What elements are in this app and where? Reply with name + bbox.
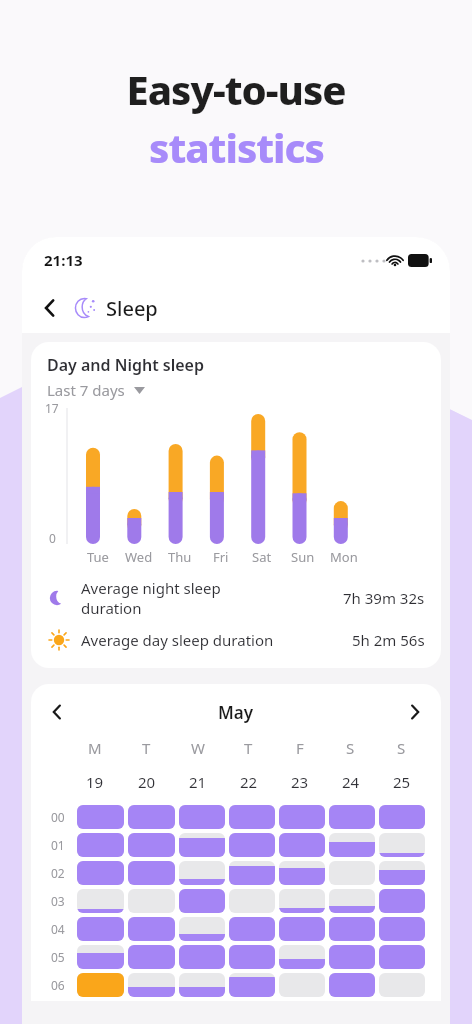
- button[interactable]: [279, 833, 325, 857]
- button[interactable]: [128, 833, 175, 857]
- button[interactable]: Last 7 days: [47, 380, 145, 400]
- button[interactable]: [329, 889, 375, 913]
- staticText: F: [296, 738, 304, 758]
- staticText: Day and Night sleep: [47, 354, 204, 376]
- staticText: Fri: [213, 548, 229, 566]
- button[interactable]: [379, 917, 425, 941]
- button[interactable]: [229, 805, 275, 829]
- button[interactable]: [128, 889, 175, 913]
- button[interactable]: [77, 833, 124, 857]
- button[interactable]: [279, 861, 325, 885]
- button[interactable]: [229, 833, 275, 857]
- staticText: Tue: [87, 548, 109, 566]
- staticText: 0: [49, 530, 56, 546]
- button[interactable]: [128, 973, 175, 997]
- button[interactable]: [379, 973, 425, 997]
- staticText: 03: [51, 893, 65, 909]
- staticText: 7h 39m 32s: [343, 588, 425, 608]
- button[interactable]: [379, 861, 425, 885]
- staticText: 21:13: [44, 250, 83, 270]
- staticText: 05: [51, 949, 65, 965]
- button[interactable]: [279, 945, 325, 969]
- button[interactable]: [179, 805, 225, 829]
- button[interactable]: Average day sleep duration: [31, 624, 441, 656]
- button[interactable]: [179, 833, 225, 857]
- staticText: statistics: [149, 120, 324, 174]
- staticText: Easy-to-use: [126, 62, 346, 116]
- button[interactable]: [329, 973, 375, 997]
- staticText: Sleep: [106, 295, 158, 322]
- staticText: 19: [86, 772, 104, 792]
- button[interactable]: [329, 805, 375, 829]
- button[interactable]: [77, 805, 124, 829]
- staticText: 5h 2m 56s: [352, 630, 425, 650]
- staticText: 20: [138, 772, 156, 792]
- button[interactable]: [179, 889, 225, 913]
- button[interactable]: [77, 889, 124, 913]
- staticText: 02: [51, 865, 65, 881]
- button[interactable]: [128, 917, 175, 941]
- button[interactable]: [379, 945, 425, 969]
- button[interactable]: [379, 833, 425, 857]
- button[interactable]: [128, 861, 175, 885]
- staticText: T: [244, 738, 253, 758]
- button[interactable]: [77, 917, 124, 941]
- button[interactable]: [179, 945, 225, 969]
- staticText: Sat: [252, 548, 272, 566]
- staticText: 04: [51, 921, 65, 937]
- button[interactable]: [229, 917, 275, 941]
- button[interactable]: [229, 861, 275, 885]
- button[interactable]: [279, 889, 325, 913]
- button[interactable]: Previous month: [37, 692, 77, 732]
- staticText: Average night sleep duration: [81, 578, 221, 618]
- staticText: Wed: [125, 548, 153, 566]
- button[interactable]: [128, 805, 175, 829]
- button[interactable]: [379, 805, 425, 829]
- button[interactable]: [179, 861, 225, 885]
- staticText: 22: [240, 772, 258, 792]
- button[interactable]: [77, 945, 124, 969]
- staticText: 24: [342, 772, 360, 792]
- button[interactable]: [329, 945, 375, 969]
- button[interactable]: [279, 973, 325, 997]
- staticText: May: [218, 701, 254, 724]
- staticText: W: [191, 738, 205, 758]
- staticText: 17: [45, 400, 59, 416]
- button[interactable]: [128, 945, 175, 969]
- button[interactable]: [329, 917, 375, 941]
- staticText: S: [397, 738, 406, 758]
- staticText: 23: [291, 772, 309, 792]
- button[interactable]: [229, 889, 275, 913]
- staticText: Last 7 days: [47, 380, 125, 400]
- button[interactable]: [329, 833, 375, 857]
- button[interactable]: [77, 861, 124, 885]
- button[interactable]: [179, 973, 225, 997]
- staticText: T: [142, 738, 151, 758]
- button[interactable]: [179, 917, 225, 941]
- button[interactable]: [329, 861, 375, 885]
- staticText: 01: [51, 837, 65, 853]
- staticText: Thu: [168, 548, 192, 566]
- button[interactable]: Next month: [395, 692, 435, 732]
- staticText: S: [346, 738, 355, 758]
- staticText: M: [88, 738, 102, 758]
- staticText: 00: [51, 809, 65, 825]
- button[interactable]: [279, 917, 325, 941]
- button[interactable]: Back: [30, 288, 70, 328]
- button[interactable]: [229, 945, 275, 969]
- staticText: Sun: [291, 548, 315, 566]
- button[interactable]: [379, 889, 425, 913]
- staticText: Mon: [330, 548, 358, 566]
- button[interactable]: [279, 805, 325, 829]
- button[interactable]: [77, 973, 124, 997]
- staticText: 25: [393, 772, 411, 792]
- staticText: 06: [51, 977, 65, 993]
- staticText: 21: [189, 772, 207, 792]
- button[interactable]: [229, 973, 275, 997]
- button[interactable]: Average night sleep duration: [31, 572, 441, 624]
- staticText: Average day sleep duration: [81, 630, 274, 650]
